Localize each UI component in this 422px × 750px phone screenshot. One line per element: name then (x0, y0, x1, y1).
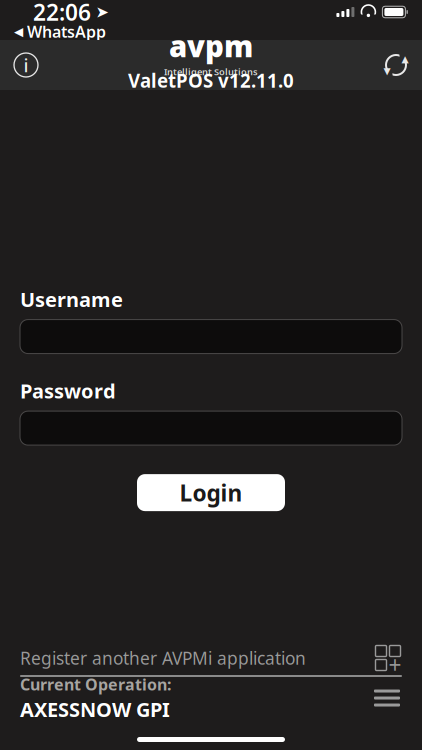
staticText: Login (179, 478, 242, 508)
button[interactable]: Login (137, 474, 285, 511)
button[interactable]: Current Operation: (20, 677, 402, 719)
staticText: AXESSNOW GPI (20, 696, 170, 722)
staticText: ▲ (401, 54, 408, 64)
staticText: Intelligent Solutions (164, 65, 258, 78)
staticText: i (23, 53, 28, 77)
staticText: Password (20, 378, 116, 404)
staticText: ▼ (383, 66, 390, 76)
staticText: + (388, 650, 401, 680)
staticText: WhatsApp (27, 21, 106, 42)
staticText: avpm (169, 26, 253, 65)
staticText: ValetPOS v12.11.0 (128, 68, 294, 93)
staticText: ◀ (14, 25, 23, 38)
staticText: Username (20, 286, 123, 313)
staticText: ➤ (95, 3, 108, 21)
button[interactable]: Refresh (370, 40, 422, 90)
staticText: Current Operation: (20, 674, 171, 695)
button[interactable]: Information (0, 40, 52, 90)
staticText: Register another AVPMi application (20, 646, 306, 669)
button[interactable]: Register another AVPMi application (20, 641, 402, 675)
staticText: 22:06 (33, 0, 91, 27)
